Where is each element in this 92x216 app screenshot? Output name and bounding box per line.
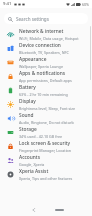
staticText: Lock screen & security <box>19 140 71 147</box>
button[interactable]: Home <box>53 207 65 212</box>
staticText: Fingerprint Manager, Location <box>19 148 72 153</box>
button[interactable]: Display <box>0 97 92 111</box>
button[interactable]: Lock screen & security <box>0 139 92 153</box>
button[interactable]: Storage <box>0 125 92 139</box>
button[interactable]: Search settings <box>4 13 88 24</box>
staticText: Brightness level, Sleep, Font size <box>19 106 76 111</box>
staticText: Network & internet <box>19 28 64 35</box>
staticText: 9:41 <box>3 1 12 7</box>
staticText: Accounts <box>19 154 40 161</box>
staticText: Apps & notifications <box>19 70 66 77</box>
button[interactable]: Apps & notifications <box>0 69 92 83</box>
staticText: Wallpaper, Xperia Lounge <box>19 64 63 69</box>
button[interactable]: Appearance <box>0 55 92 69</box>
staticText: 60% <box>82 2 90 7</box>
button[interactable]: Sound <box>0 111 92 125</box>
button[interactable]: Accounts <box>0 153 92 167</box>
staticText: Xperia, Tips and other features <box>19 176 73 181</box>
staticText: App permissions, Default apps <box>19 78 72 83</box>
button[interactable]: Battery <box>0 83 92 97</box>
staticText: Appearance <box>19 56 47 63</box>
button[interactable]: Back <box>28 204 39 215</box>
staticText: Device connection <box>19 42 61 49</box>
button[interactable]: Device connection <box>0 41 92 55</box>
staticText: Wi-Fi, Mobile, Data usage, Hotspot <box>19 36 79 41</box>
staticText: Audio, Ringtone, Do not disturb <box>19 120 74 125</box>
button[interactable]: Network & internet <box>0 27 92 41</box>
staticText: Display <box>19 98 36 105</box>
staticText: 34% used - 42.10 GB free <box>19 134 63 139</box>
staticText: Search settings <box>16 16 49 22</box>
staticText: Bluetooth, TV, Speakers, NFC <box>19 50 69 55</box>
button[interactable]: Xperia Assist <box>0 167 92 181</box>
staticText: Google, Xperia <box>19 162 45 167</box>
staticText: Sound <box>19 112 34 119</box>
staticText: 63% - 2 hr 10 min remaining <box>19 92 68 97</box>
staticText: Xperia Assist <box>19 168 49 175</box>
staticText: Battery <box>19 84 36 91</box>
staticText: Storage <box>19 126 37 133</box>
